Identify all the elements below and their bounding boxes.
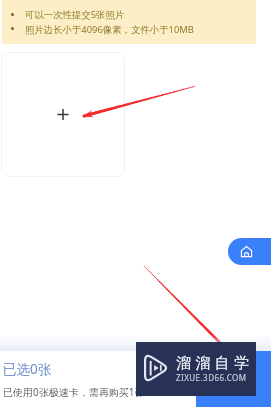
- button[interactable]: 添加照片: [1, 52, 125, 177]
- staticText: 已使用0张极速卡，需再购买1张: [3, 385, 145, 399]
- staticText: 可以一次性提交5张照片: [25, 8, 125, 21]
- staticText: ZIXUE.3D66.COM: [176, 372, 247, 383]
- button[interactable]: 首页: [228, 238, 271, 265]
- staticText: 照片边长小于4096像素，文件小于10MB: [25, 23, 194, 36]
- staticText: 已选0张: [3, 360, 52, 378]
- staticText: 溜溜自学: [176, 354, 254, 373]
- button[interactable]: 可以一次性提交5张照片: [2, 0, 256, 44]
- button[interactable]: 提交: [196, 351, 271, 407]
